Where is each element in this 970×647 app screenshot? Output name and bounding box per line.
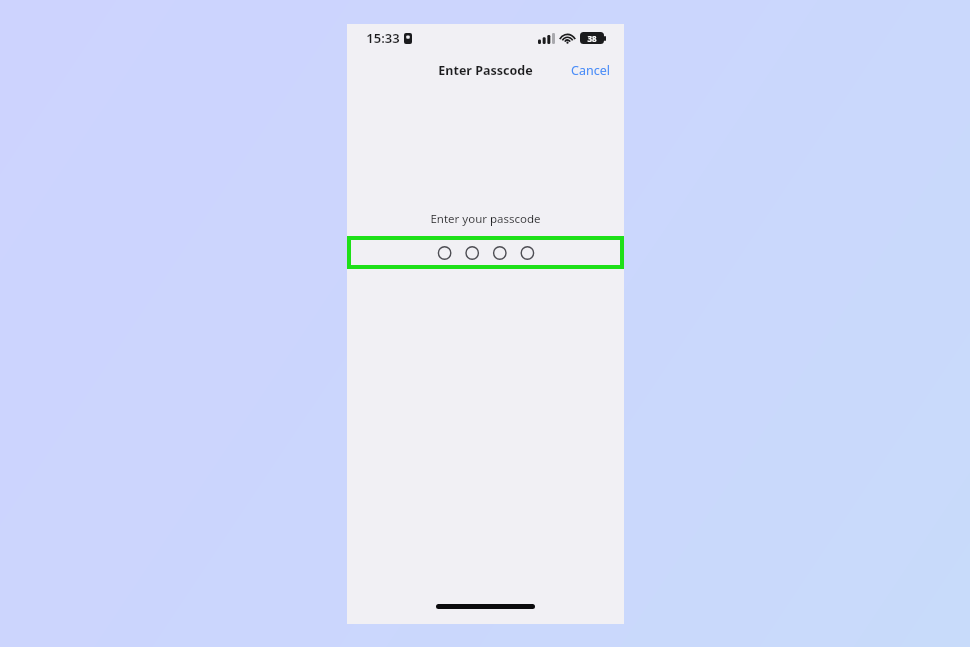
button[interactable]: Cancel <box>557 59 624 82</box>
staticText: Cancel <box>571 62 610 79</box>
button[interactable]: Passcode entry field <box>347 236 624 269</box>
staticText: 15:33 <box>366 29 400 47</box>
staticText: Enter your passcode <box>430 211 541 227</box>
staticText: 38 <box>587 33 597 44</box>
staticText: Enter Passcode <box>438 62 533 79</box>
